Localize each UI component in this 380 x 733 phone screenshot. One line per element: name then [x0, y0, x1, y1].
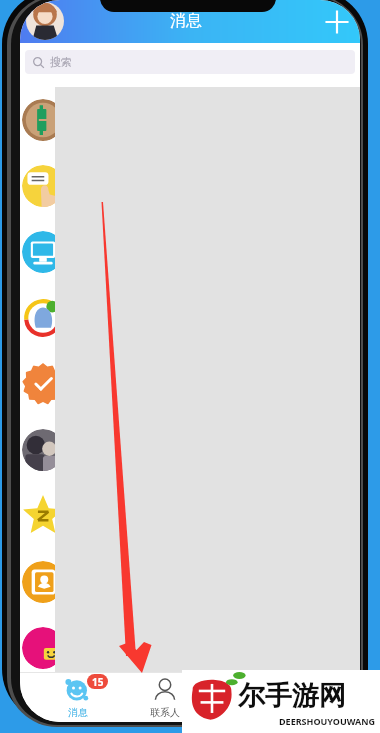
staticText: 消息 — [68, 706, 88, 719]
button[interactable] — [22, 627, 64, 669]
button[interactable]: Profile — [26, 2, 64, 40]
button[interactable] — [22, 165, 64, 207]
button[interactable]: 15 — [38, 674, 118, 720]
button[interactable]: New message — [320, 5, 354, 39]
button[interactable] — [22, 495, 64, 537]
staticText: DEERSHOUYOUWANG — [279, 715, 376, 727]
button[interactable] — [22, 429, 64, 471]
button[interactable] — [22, 297, 64, 339]
staticText: 消息 — [170, 11, 202, 31]
staticText: 15 — [92, 675, 104, 689]
staticText: 联系人 — [150, 706, 180, 719]
button[interactable]: 联系人 — [125, 674, 205, 720]
button[interactable] — [22, 99, 64, 141]
button[interactable] — [22, 561, 64, 603]
staticText: 尔手游网 — [238, 679, 346, 713]
button[interactable] — [22, 231, 64, 273]
button[interactable] — [22, 363, 64, 405]
button[interactable]: 搜索 — [25, 50, 355, 74]
staticText: 搜索 — [50, 55, 72, 69]
